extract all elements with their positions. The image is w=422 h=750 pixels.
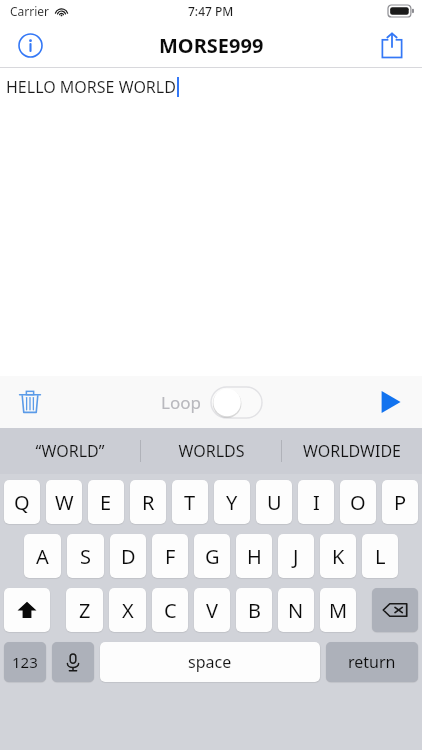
button[interactable]: I: [298, 480, 334, 524]
button[interactable]: Backspace: [372, 588, 418, 632]
staticText: Loop: [161, 391, 201, 414]
staticText: S: [80, 543, 91, 570]
staticText: N: [288, 597, 304, 624]
staticText: F: [165, 543, 176, 570]
button[interactable]: Info: [10, 25, 50, 65]
staticText: 123: [12, 652, 38, 672]
button[interactable]: W: [46, 480, 82, 524]
staticText: T: [184, 489, 196, 516]
staticText: I: [313, 489, 320, 516]
button[interactable]: F: [152, 534, 188, 578]
staticText: P: [394, 489, 407, 516]
button[interactable]: Q: [4, 480, 40, 524]
staticText: X: [122, 597, 134, 624]
button[interactable]: G: [194, 534, 230, 578]
staticText: O: [350, 489, 366, 516]
button[interactable]: U: [256, 480, 292, 524]
button[interactable]: S: [67, 534, 104, 578]
button[interactable]: E: [88, 480, 124, 524]
staticText: U: [267, 489, 282, 516]
button[interactable]: WORLDWIDE: [282, 428, 422, 474]
staticText: return: [348, 651, 396, 673]
staticText: G: [205, 543, 220, 570]
staticText: D: [121, 543, 136, 570]
button[interactable]: X: [109, 588, 146, 632]
button[interactable]: N: [278, 588, 314, 632]
button[interactable]: Dictate: [52, 642, 94, 682]
button[interactable]: H: [236, 534, 272, 578]
button[interactable]: B: [236, 588, 272, 632]
staticText: space: [188, 651, 232, 673]
button[interactable]: O: [340, 480, 376, 524]
button[interactable]: Shift: [4, 588, 50, 632]
button[interactable]: Y: [214, 480, 250, 524]
button[interactable]: R: [130, 480, 166, 524]
staticText: “WORLD”: [35, 440, 105, 462]
button[interactable]: space: [100, 642, 320, 682]
button[interactable]: Delete: [8, 380, 52, 424]
button[interactable]: Share: [372, 25, 412, 65]
button[interactable]: Loop toggle: [211, 387, 262, 418]
button[interactable]: P: [382, 480, 418, 524]
staticText: H: [247, 543, 262, 570]
button[interactable]: Z: [66, 588, 103, 632]
staticText: HELLO MORSE WORLD: [6, 76, 176, 98]
staticText: C: [164, 597, 177, 624]
staticText: Y: [226, 489, 238, 516]
staticText: MORSE999: [159, 32, 264, 59]
button[interactable]: K: [320, 534, 356, 578]
staticText: Carrier: [10, 3, 50, 19]
button[interactable]: D: [110, 534, 146, 578]
button[interactable]: J: [278, 534, 314, 578]
button[interactable]: A: [24, 534, 61, 578]
staticText: WORLDS: [178, 440, 245, 462]
staticText: A: [36, 543, 49, 570]
button[interactable]: M: [320, 588, 356, 632]
staticText: K: [332, 543, 345, 570]
button[interactable]: “WORLD”: [0, 428, 140, 474]
button[interactable]: return: [326, 642, 418, 682]
staticText: W: [55, 489, 74, 516]
button[interactable]: 123: [4, 642, 46, 682]
button[interactable]: Play: [368, 380, 412, 424]
staticText: J: [293, 543, 299, 570]
staticText: 7:47 PM: [188, 3, 234, 19]
button[interactable]: WORLDS: [141, 428, 281, 474]
staticText: Q: [14, 489, 30, 516]
staticText: V: [206, 597, 218, 624]
staticText: WORLDWIDE: [303, 440, 401, 462]
staticText: E: [100, 489, 112, 516]
button[interactable]: C: [152, 588, 188, 632]
staticText: B: [248, 597, 261, 624]
staticText: L: [375, 543, 386, 570]
staticText: R: [142, 489, 155, 516]
button[interactable]: V: [194, 588, 230, 632]
button[interactable]: L: [362, 534, 398, 578]
staticText: M: [329, 597, 348, 624]
button[interactable]: T: [172, 480, 208, 524]
staticText: Z: [79, 597, 91, 624]
